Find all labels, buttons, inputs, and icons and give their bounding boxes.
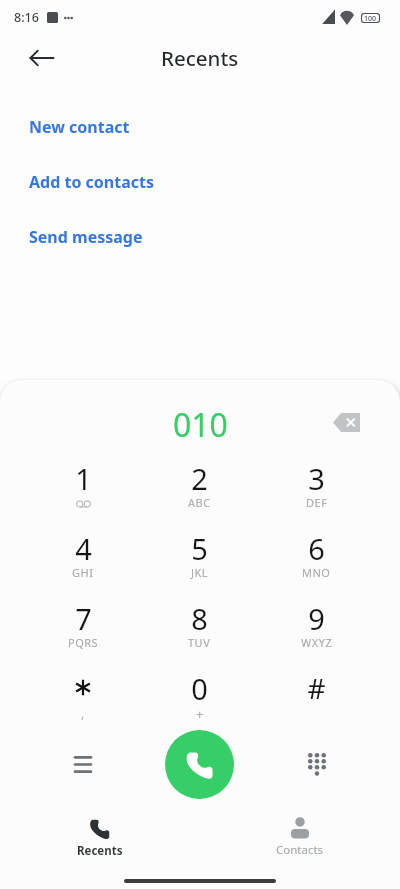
- button[interactable]: ,: [25, 669, 141, 739]
- button[interactable]: Back: [18, 34, 66, 82]
- staticText: 010: [173, 403, 228, 447]
- staticText: Recents: [161, 44, 239, 72]
- staticText: Recents: [77, 843, 123, 859]
- button[interactable]: 5: [141, 529, 258, 599]
- staticText: PQRS: [68, 635, 99, 650]
- button[interactable]: 2: [141, 459, 258, 529]
- staticText: 8:16: [14, 9, 39, 26]
- staticText: 9: [308, 599, 325, 638]
- staticText: 7: [75, 599, 92, 638]
- staticText: GHI: [72, 565, 94, 580]
- button[interactable]: 9: [258, 599, 375, 669]
- staticText: Send message: [29, 226, 143, 248]
- staticText: #: [307, 669, 326, 707]
- button[interactable]: More options: [25, 724, 141, 804]
- button[interactable]: Call: [165, 730, 234, 799]
- staticText: New contact: [29, 116, 130, 138]
- staticText: 6: [308, 529, 325, 568]
- staticText: WXYZ: [301, 635, 333, 650]
- staticText: 4: [75, 529, 92, 568]
- staticText: DEF: [306, 495, 328, 510]
- button[interactable]: Dialpad: [258, 724, 375, 804]
- staticText: 3: [308, 459, 325, 498]
- staticText: 100: [364, 14, 377, 22]
- button[interactable]: 1: [25, 459, 141, 529]
- button[interactable]: 0: [141, 669, 258, 739]
- button[interactable]: Backspace: [322, 398, 370, 446]
- button[interactable]: 4: [25, 529, 141, 599]
- staticText: MNO: [302, 565, 331, 580]
- staticText: JKL: [191, 565, 209, 580]
- button[interactable]: 7: [25, 599, 141, 669]
- button[interactable]: Contacts: [200, 814, 400, 872]
- staticText: TUV: [188, 635, 211, 650]
- button[interactable]: Send message: [0, 218, 400, 256]
- staticText: +: [196, 705, 204, 723]
- staticText: Add to contacts: [29, 171, 154, 193]
- staticText: 0: [191, 669, 208, 708]
- staticText: 1: [75, 459, 92, 498]
- button[interactable]: 8: [141, 599, 258, 669]
- staticText: Contacts: [276, 842, 324, 858]
- staticText: ABC: [188, 495, 211, 510]
- button[interactable]: New contact: [0, 108, 400, 146]
- button[interactable]: Add to contacts: [0, 163, 400, 201]
- staticText: 8: [191, 599, 208, 638]
- button[interactable]: 3: [258, 459, 375, 529]
- button[interactable]: #: [258, 669, 375, 739]
- button[interactable]: Recents: [0, 814, 200, 872]
- staticText: 2: [191, 459, 208, 498]
- staticText: ,: [81, 705, 85, 721]
- staticText: 5: [191, 529, 208, 568]
- button[interactable]: 6: [258, 529, 375, 599]
